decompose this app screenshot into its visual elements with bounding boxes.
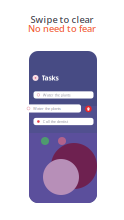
staticText: No need to fear: [28, 22, 96, 35]
staticText: Call the dentist: [43, 119, 68, 124]
staticText: Tasks: [41, 73, 58, 82]
staticText: Water the plants: [33, 106, 61, 111]
staticText: Swipe to clear: [30, 13, 93, 26]
button[interactable]: Water the plants: [33, 91, 93, 98]
button[interactable]: Delete task: [84, 104, 93, 113]
button[interactable]: Water the plants: [0, 104, 81, 112]
button[interactable]: Call the dentist: [33, 118, 93, 125]
staticText: Water the plants: [43, 92, 71, 97]
